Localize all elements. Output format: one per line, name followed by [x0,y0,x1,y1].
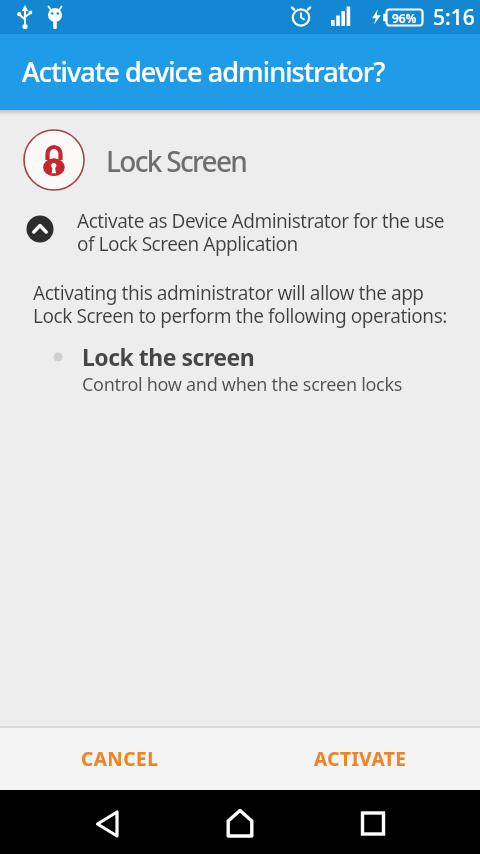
button[interactable] [320,790,480,854]
staticText: Activate as Device Administrator for the… [77,208,445,257]
button[interactable] [160,790,320,854]
staticText: Activate device administrator? [22,53,385,90]
button[interactable]: CANCEL [0,728,240,790]
staticText: 96% [392,10,417,26]
staticText: 5:16 [433,3,475,32]
staticText: Lock the screen [82,341,255,372]
button[interactable] [0,790,160,854]
staticText: ACTIVATE [314,746,407,772]
staticText: Lock Screen [106,142,247,180]
button[interactable]: ACTIVATE [240,728,480,790]
staticText: CANCEL [81,746,159,772]
staticText: Control how and when the screen locks [82,372,403,397]
staticText: Activating this administrator will allow… [33,280,447,329]
